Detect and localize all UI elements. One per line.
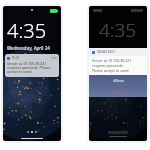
button[interactable]: Allow (89, 75, 147, 86)
button[interactable]: DUO (5, 54, 59, 77)
staticText: SAFARI DUO (97, 50, 115, 54)
staticText: now (51, 56, 57, 60)
staticText: Wednesday, April 24 (7, 45, 50, 51)
staticText: 4:35 (99, 17, 137, 43)
staticText: Allow (113, 78, 124, 84)
staticText: Server at 10.100.38.221 requires passcod… (7, 61, 57, 75)
staticText: 4:35 (7, 17, 47, 44)
staticText: Deny (113, 89, 124, 95)
button[interactable]: Deny (89, 86, 147, 97)
staticText: Server at 10.100.38.221 requires passcod… (92, 58, 144, 73)
staticText: DUO (12, 56, 20, 60)
